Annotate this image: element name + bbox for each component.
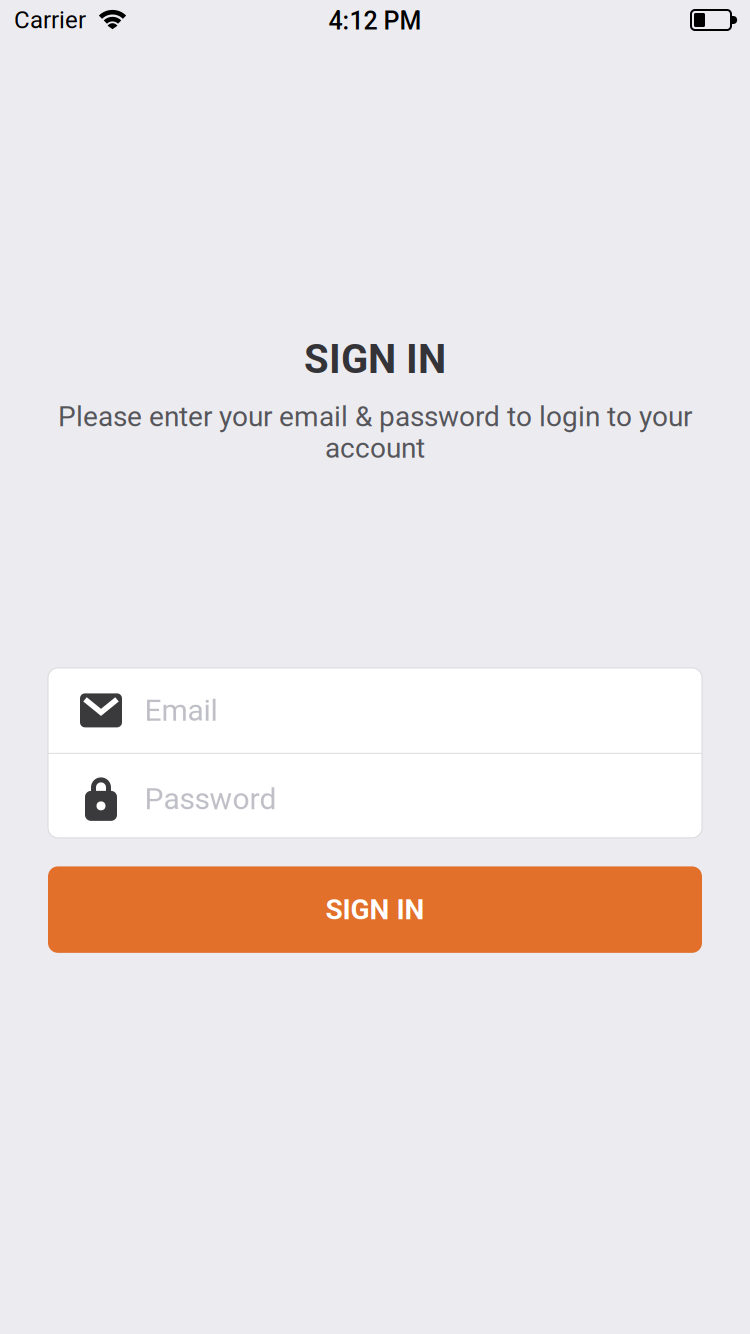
staticText: account	[325, 432, 425, 464]
staticText: 4:12 PM	[328, 6, 421, 36]
staticText: Carrier	[14, 6, 86, 34]
staticText: SIGN IN	[325, 893, 424, 926]
staticText: SIGN IN	[304, 336, 446, 383]
button[interactable]: Email	[48, 668, 702, 753]
staticText: Please enter your email & password to lo…	[58, 400, 692, 433]
staticText: Password	[144, 781, 276, 816]
button[interactable]: SIGN IN	[48, 866, 702, 953]
staticText: Email	[144, 693, 217, 728]
button[interactable]: Password	[48, 754, 702, 838]
